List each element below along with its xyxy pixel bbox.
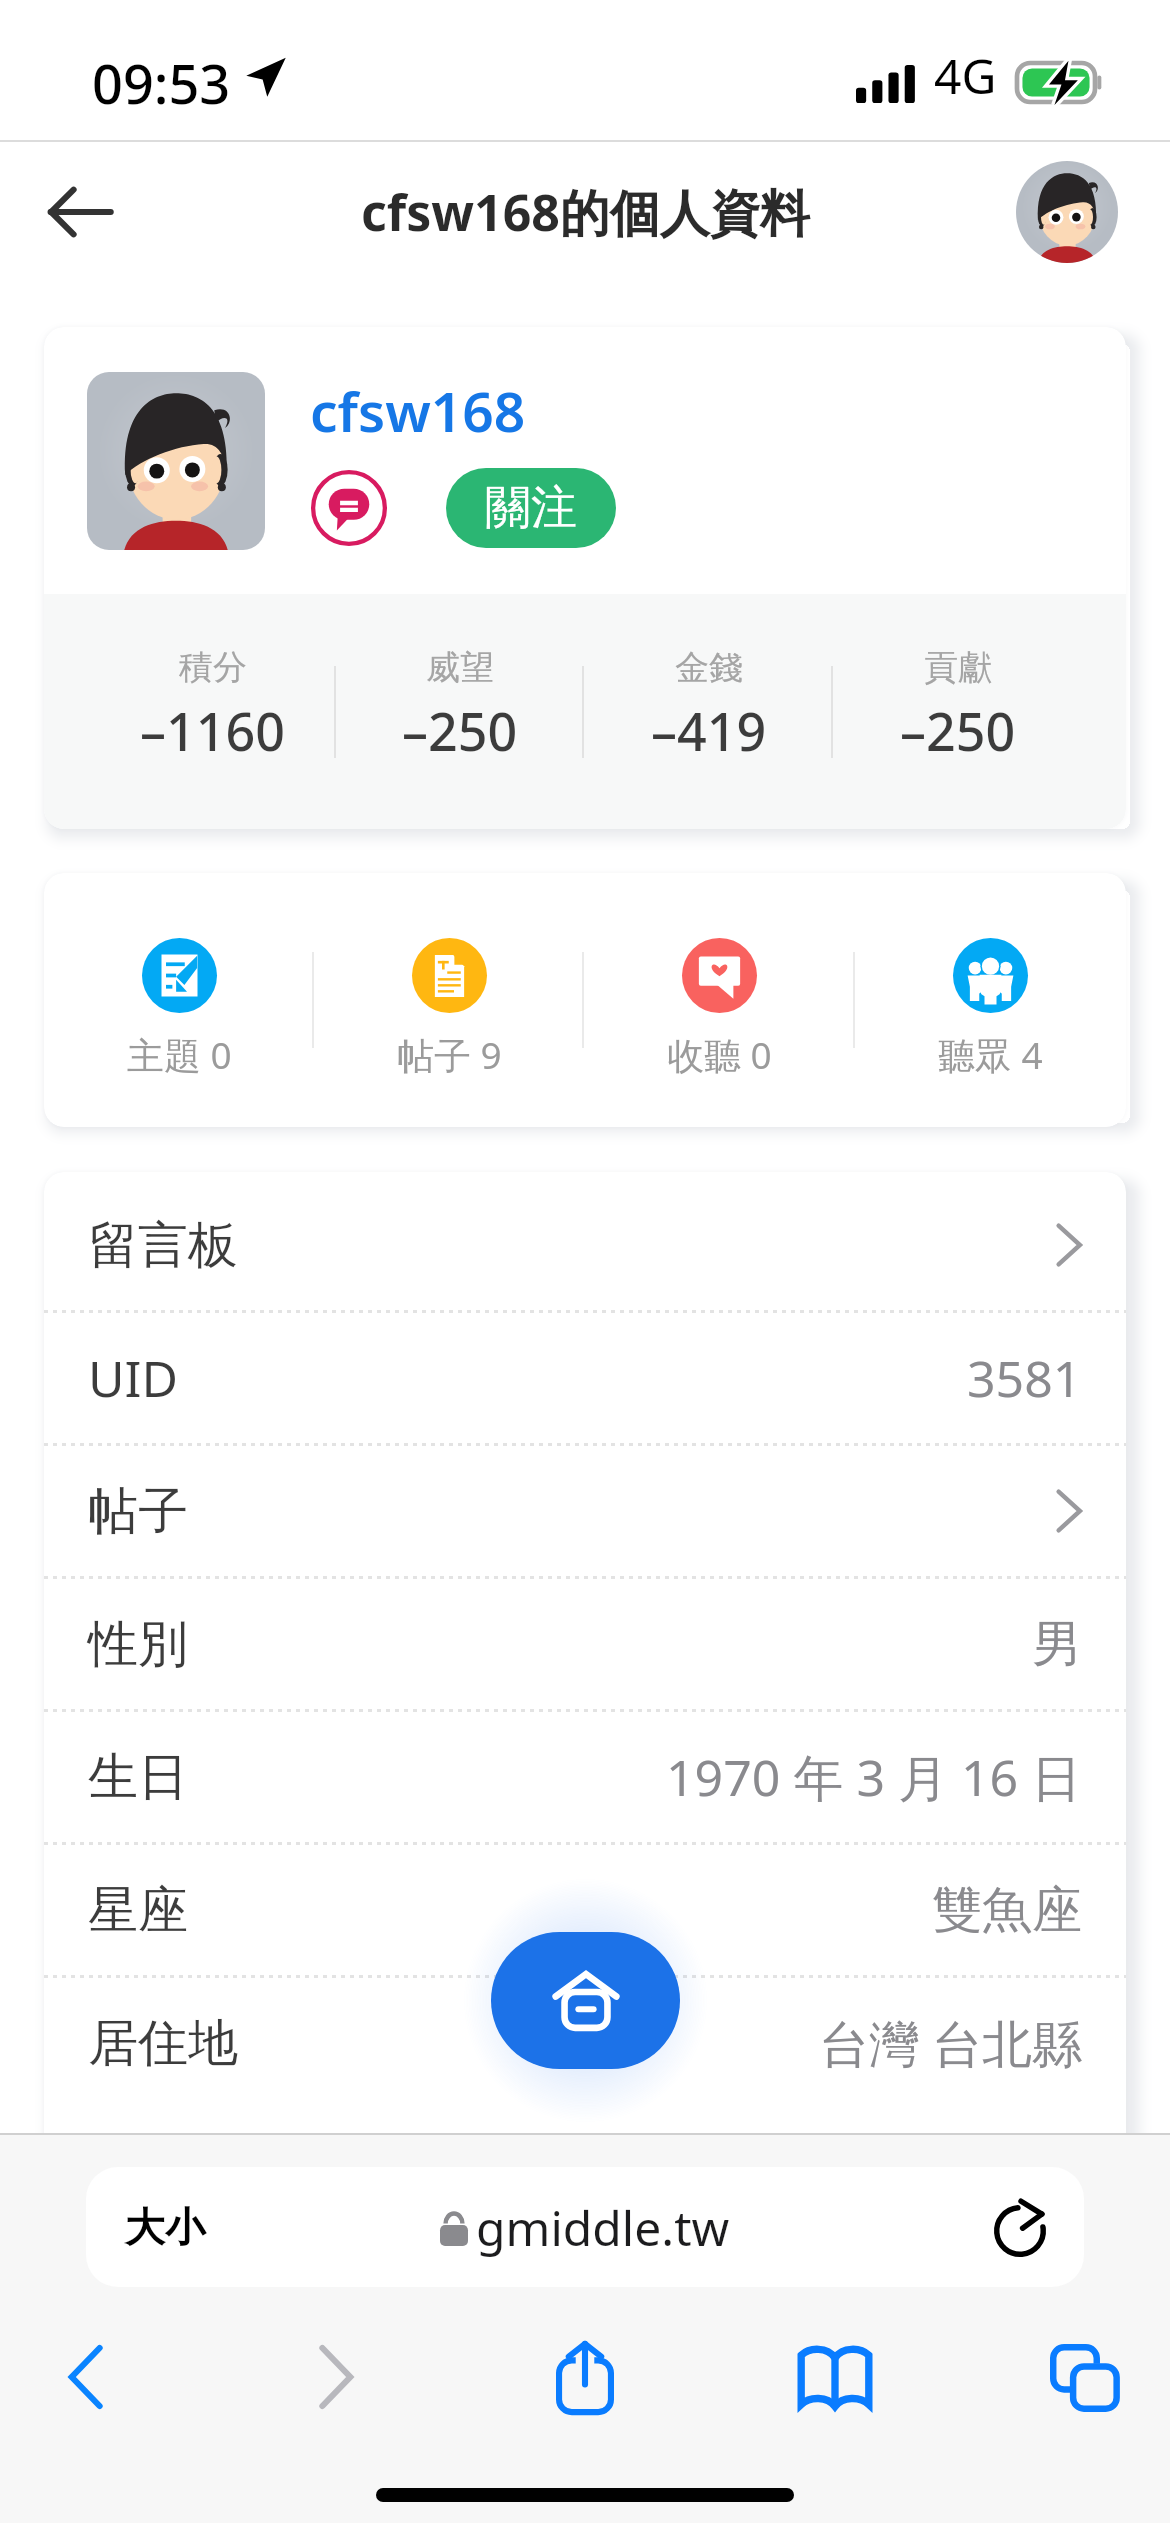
button[interactable]: Back bbox=[30, 162, 130, 262]
button[interactable]: UID bbox=[44, 1313, 1126, 1446]
button[interactable]: 性別 bbox=[44, 1579, 1126, 1712]
staticText: 威望 bbox=[426, 646, 494, 689]
staticText: 大小 bbox=[125, 2202, 205, 2252]
button[interactable]: 帖子 9 bbox=[397, 938, 502, 1080]
button[interactable]: Forward bbox=[272, 2317, 400, 2437]
staticText: 帖子 bbox=[88, 1480, 188, 1543]
button[interactable]: 關注 bbox=[446, 468, 616, 548]
button[interactable]: 星座 bbox=[44, 1845, 1126, 1978]
staticText: –1160 bbox=[140, 695, 285, 766]
button[interactable]: Reload bbox=[990, 2197, 1050, 2257]
staticText: cfsw168的個人資料 bbox=[361, 178, 810, 246]
staticText: 生日 bbox=[88, 1746, 188, 1809]
staticText: 主題 0 bbox=[127, 1029, 232, 1080]
staticText: 積分 bbox=[179, 646, 247, 689]
staticText: 貢獻 bbox=[924, 646, 992, 689]
button[interactable]: 留言板 bbox=[44, 1180, 1126, 1313]
staticText: 留言板 bbox=[88, 1214, 238, 1277]
staticText: 帖子 9 bbox=[397, 1029, 502, 1080]
staticText: 關注 bbox=[485, 479, 577, 537]
button[interactable]: Share bbox=[521, 2317, 649, 2437]
button[interactable]: 收聽 0 bbox=[667, 938, 772, 1080]
staticText: cfsw168 bbox=[310, 373, 526, 448]
button[interactable]: 居住地 bbox=[44, 1978, 1126, 2108]
staticText: 09:53 bbox=[92, 46, 231, 120]
staticText: 4G bbox=[934, 43, 997, 108]
staticText: 聽眾 4 bbox=[938, 1029, 1043, 1080]
staticText: UID bbox=[88, 1344, 178, 1412]
staticText: 收聽 0 bbox=[667, 1029, 772, 1080]
staticText: 1970 年 3 月 16 日 bbox=[666, 1743, 1082, 1811]
staticText: gmiddle.tw bbox=[476, 2195, 730, 2260]
button[interactable]: Home bbox=[491, 1932, 680, 2069]
button[interactable]: Bookmarks bbox=[771, 2317, 899, 2437]
staticText: 金錢 bbox=[675, 646, 743, 689]
staticText: 居住地 bbox=[88, 2012, 238, 2075]
staticText: –419 bbox=[651, 695, 767, 766]
staticText: 3581 bbox=[967, 1344, 1082, 1412]
staticText: 性別 bbox=[88, 1613, 188, 1676]
button[interactable]: 生日 bbox=[44, 1712, 1126, 1845]
staticText: 雙魚座 bbox=[932, 1879, 1082, 1942]
staticText: –250 bbox=[402, 695, 518, 766]
button[interactable]: Back bbox=[22, 2317, 150, 2437]
staticText: 星座 bbox=[88, 1879, 188, 1942]
button[interactable]: Message bbox=[310, 469, 388, 547]
button[interactable]: Tabs bbox=[1020, 2317, 1148, 2437]
button[interactable]: 聽眾 4 bbox=[938, 938, 1043, 1080]
staticText: 台灣 台北縣 bbox=[819, 2009, 1082, 2077]
button[interactable]: 主題 0 bbox=[127, 938, 232, 1080]
button[interactable]: 帖子 bbox=[44, 1446, 1126, 1579]
button[interactable]: 大小 bbox=[86, 2167, 1084, 2287]
staticText: –250 bbox=[900, 695, 1016, 766]
staticText: 男 bbox=[1032, 1613, 1082, 1676]
button[interactable]: Profile bbox=[1016, 161, 1118, 263]
